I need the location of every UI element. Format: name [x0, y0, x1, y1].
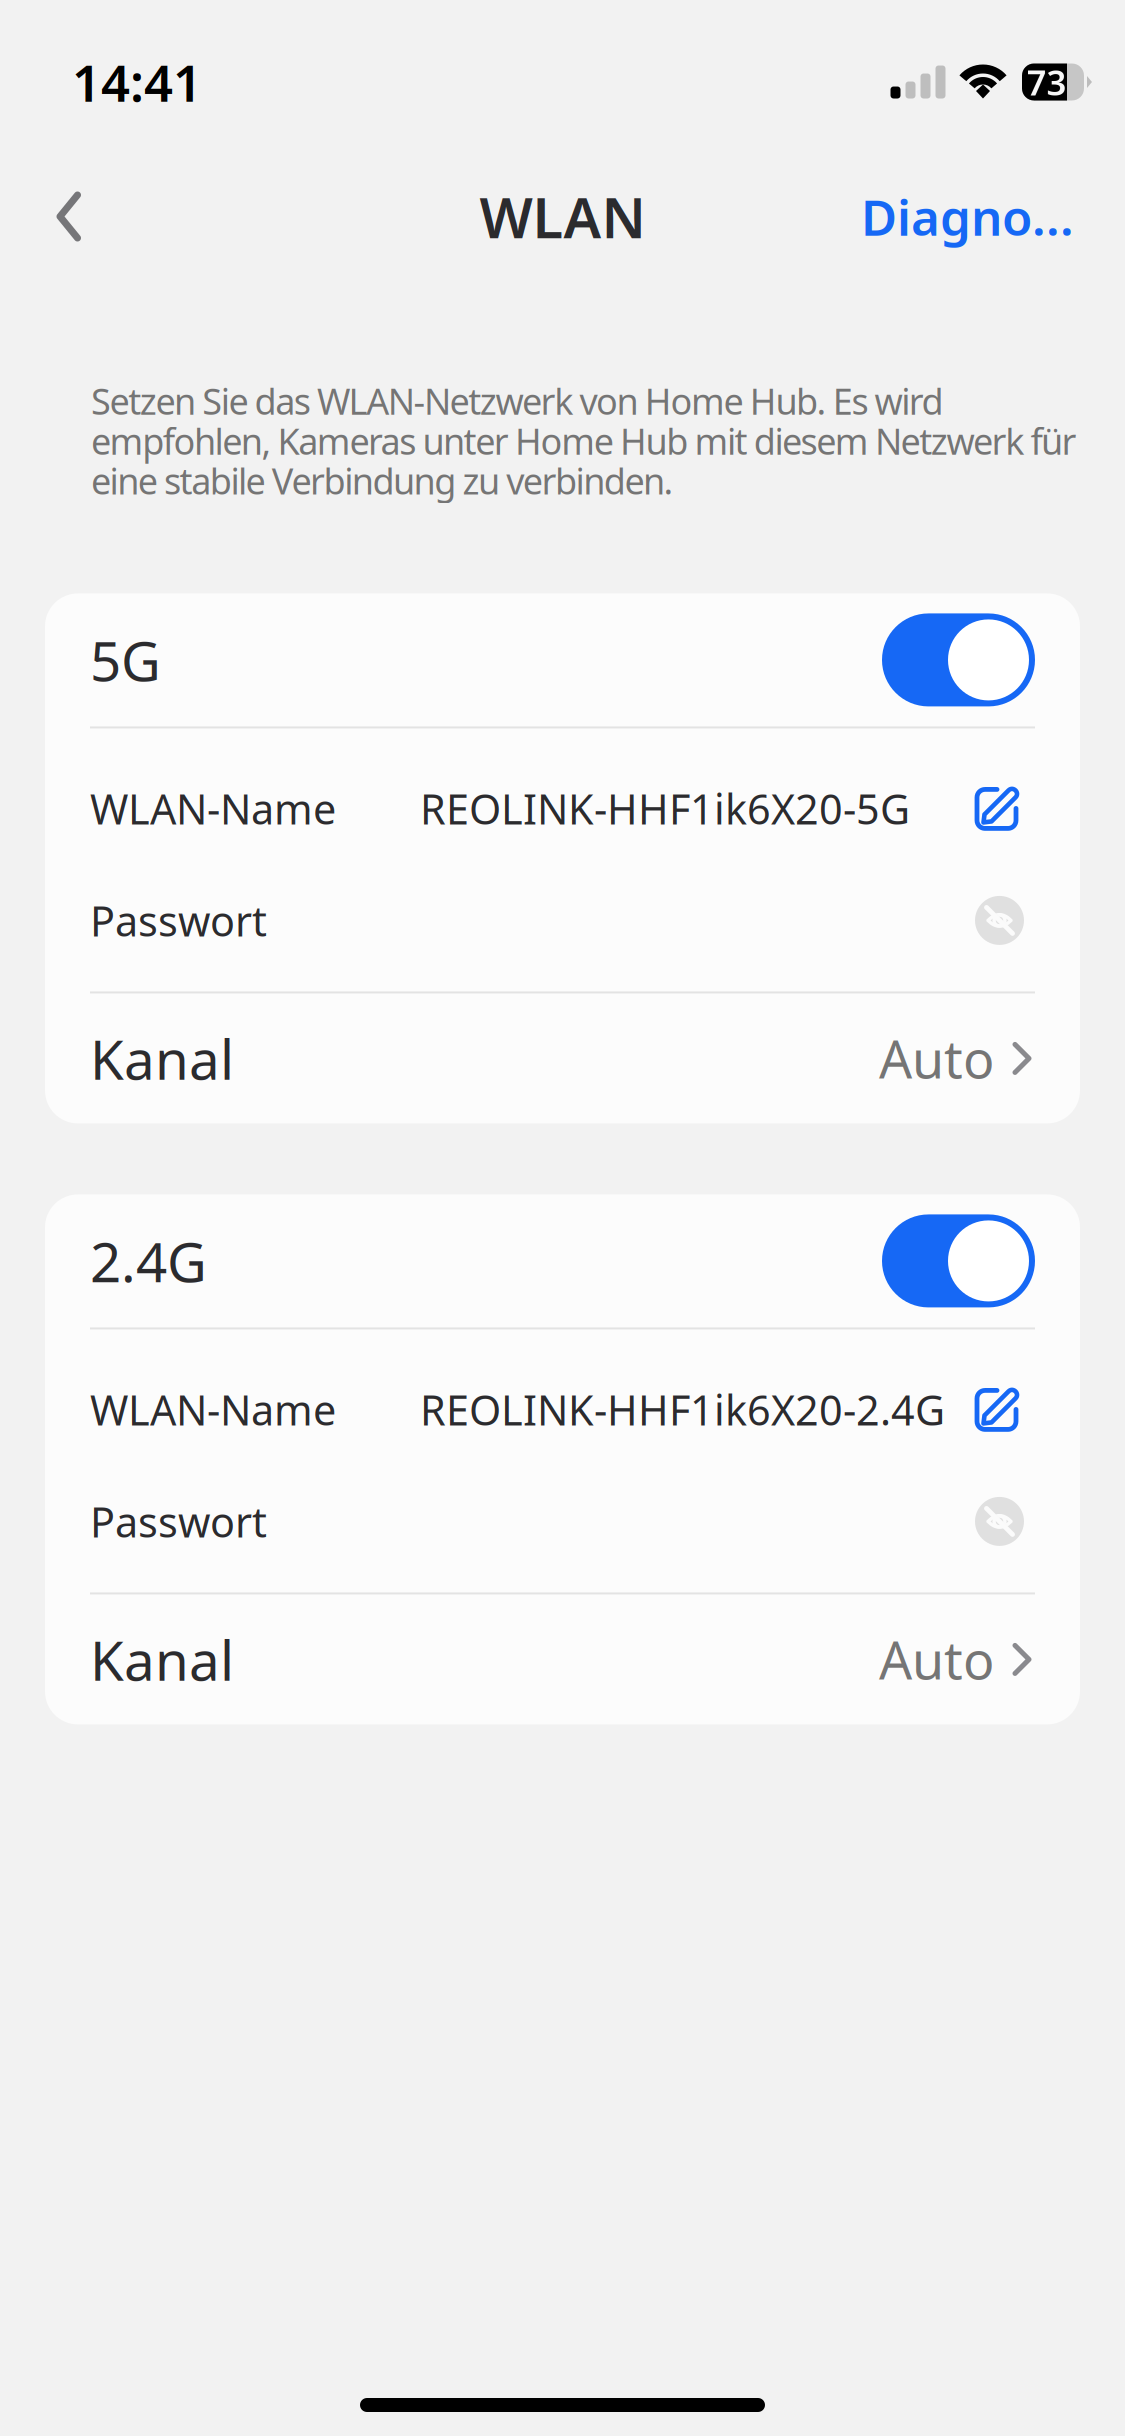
staticText: WLAN-Name: [90, 1382, 336, 1437]
staticText: 5G: [90, 624, 161, 696]
staticText: Auto: [879, 1024, 994, 1093]
button[interactable]: Kanal: [45, 1594, 1080, 1724]
staticText: 73: [1026, 59, 1066, 105]
staticText: eine stabile Verbindung zu verbinden.: [91, 457, 674, 504]
staticText: REOLINK-HHF1ik6X20-5G: [420, 781, 910, 836]
staticText: Kanal: [90, 1623, 234, 1696]
button[interactable]: WLAN-Name: [45, 1353, 1080, 1465]
button[interactable]: 2.4G: [45, 1194, 1080, 1327]
staticText: Passwort: [90, 1494, 267, 1549]
button[interactable]: Diagno...: [861, 168, 1074, 264]
staticText: WLAN-Name: [90, 781, 336, 836]
staticText: 14:41: [72, 48, 202, 116]
staticText: empfohlen, Kameras unter Home Hub mit di…: [91, 417, 1077, 465]
staticText: Auto: [879, 1625, 994, 1694]
staticText: 2.4G: [90, 1225, 207, 1297]
staticText: Diagno...: [861, 184, 1074, 249]
button[interactable]: Kanal: [45, 993, 1080, 1123]
staticText: WLAN: [479, 179, 645, 254]
button[interactable]: Passwort: [45, 1465, 1080, 1577]
staticText: REOLINK-HHF1ik6X20-2.4G: [420, 1382, 945, 1437]
staticText: Setzen Sie das WLAN-Netzwerk von Home Hu…: [91, 377, 943, 425]
button[interactable]: 5G: [45, 593, 1080, 726]
staticText: Kanal: [90, 1022, 234, 1095]
button[interactable]: Back: [24, 168, 114, 264]
button[interactable]: WLAN-Name: [45, 752, 1080, 864]
button[interactable]: Passwort: [45, 864, 1080, 976]
staticText: Passwort: [90, 893, 267, 948]
